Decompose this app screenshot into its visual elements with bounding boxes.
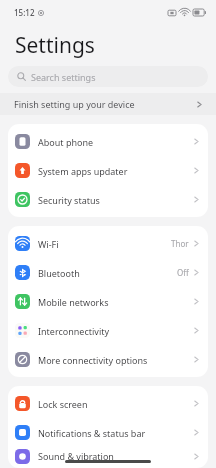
staticText: Search settings: [31, 71, 96, 83]
button[interactable]: Wi-Fi: [8, 229, 208, 258]
staticText: Off: [177, 267, 189, 278]
staticText: Finish setting up your device: [14, 98, 197, 110]
button[interactable]: Search settings: [8, 66, 208, 87]
staticText: Thor: [171, 238, 189, 249]
staticText: Lock screen: [38, 398, 194, 410]
staticText: About phone: [38, 136, 194, 148]
button[interactable]: Notifications & status bar: [8, 418, 208, 447]
button[interactable]: Lock screen: [8, 389, 208, 418]
button[interactable]: More connectivity options: [8, 345, 208, 374]
staticText: Sound & vibration: [38, 450, 194, 462]
staticText: Interconnectivity: [38, 325, 194, 337]
button[interactable]: System apps updater: [8, 156, 208, 185]
button[interactable]: Security status: [8, 185, 208, 214]
staticText: Security status: [38, 194, 194, 206]
staticText: System apps updater: [38, 165, 194, 177]
button[interactable]: Bluetooth: [8, 258, 208, 287]
staticText: Notifications & status bar: [38, 427, 194, 439]
staticText: Wi-Fi: [38, 238, 171, 250]
button[interactable]: Finish setting up your device: [0, 93, 216, 115]
staticText: More connectivity options: [38, 354, 194, 366]
staticText: Mobile networks: [38, 296, 194, 308]
staticText: Bluetooth: [38, 267, 177, 279]
button[interactable]: Sound & vibration: [8, 447, 208, 465]
button[interactable]: About phone: [8, 127, 208, 156]
staticText: 15:12: [14, 7, 35, 18]
button[interactable]: Interconnectivity: [8, 316, 208, 345]
staticText: Settings: [15, 31, 95, 60]
button[interactable]: Mobile networks: [8, 287, 208, 316]
